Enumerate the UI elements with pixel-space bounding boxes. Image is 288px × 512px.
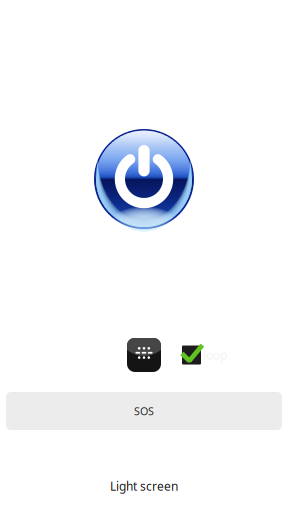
button[interactable]: loop bbox=[180, 344, 240, 366]
button[interactable]: Morse SOS bbox=[127, 338, 161, 372]
staticText: loop bbox=[203, 347, 227, 363]
button[interactable]: SOS bbox=[6, 392, 282, 430]
button[interactable]: Light screen bbox=[0, 471, 288, 501]
button[interactable]: Power bbox=[94, 129, 194, 229]
staticText: SOS bbox=[134, 404, 154, 418]
staticText: Light screen bbox=[110, 478, 178, 494]
